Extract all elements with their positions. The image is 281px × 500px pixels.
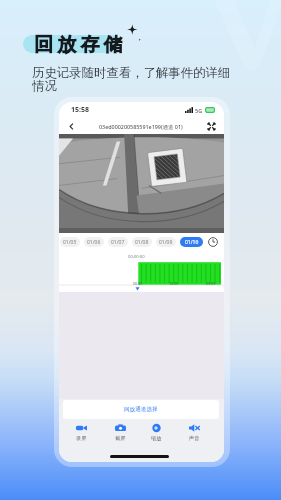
staticText: 缩放: [151, 435, 162, 442]
staticText: 01/09: [159, 239, 173, 246]
button[interactable]: 01/06: [84, 237, 104, 247]
button[interactable]: Back: [65, 120, 78, 133]
staticText: 15:58: [71, 105, 89, 115]
staticText: 录屏: [76, 435, 87, 442]
staticText: 01/06: [87, 239, 101, 246]
staticText: 23:59: [206, 281, 216, 286]
staticText: 声音: [189, 435, 200, 442]
button[interactable]: 01/09: [156, 237, 176, 247]
button[interactable]: 缩放: [140, 423, 172, 445]
button[interactable]: 01/07: [108, 237, 128, 247]
staticText: 5G: [195, 107, 203, 114]
staticText: 01/07: [111, 239, 125, 246]
button[interactable]: Fullscreen: [205, 120, 218, 133]
staticText: 00:00:00: [128, 254, 145, 260]
staticText: 00:00: [133, 281, 143, 286]
staticText: 01/10: [185, 239, 199, 246]
button[interactable]: 声音: [178, 423, 210, 445]
staticText: 01/05: [63, 239, 77, 246]
staticText: 回放存储: [34, 33, 127, 57]
staticText: 历史记录随时查看，了解事件的详细 情况: [32, 65, 231, 94]
button[interactable]: 截屏: [104, 423, 136, 445]
button[interactable]: 01/08: [132, 237, 152, 247]
button[interactable]: 回放通道选择: [63, 400, 219, 419]
button[interactable]: 录屏: [65, 423, 97, 445]
staticText: 回放通道选择: [124, 406, 158, 413]
button[interactable]: 01/05: [60, 237, 80, 247]
staticText: 01/08: [135, 239, 149, 246]
button[interactable]: 01/10: [180, 237, 203, 247]
staticText: 12:00: [169, 281, 179, 286]
staticText: 03ed000200585591e199(通道 01): [99, 123, 183, 130]
button[interactable]: Select time: [206, 235, 219, 248]
staticText: 截屏: [115, 435, 126, 442]
